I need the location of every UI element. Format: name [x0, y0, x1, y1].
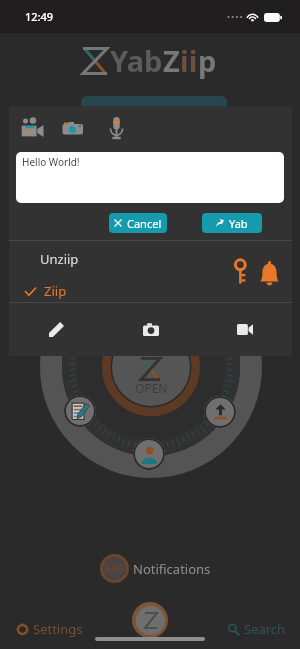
staticText: Yab — [229, 216, 248, 231]
staticText: ii — [180, 41, 198, 80]
button[interactable]: Settings — [0, 620, 120, 638]
button[interactable]: Notifications — [255, 259, 283, 287]
button[interactable]: Hello World! — [16, 152, 284, 203]
button[interactable] — [81, 96, 227, 118]
staticText: Ziip — [44, 282, 67, 300]
button[interactable]: Ziip — [136, 606, 165, 635]
button[interactable]: Take photo — [58, 113, 88, 143]
button[interactable]: Unziip — [34, 246, 85, 272]
button[interactable]: Password — [229, 260, 253, 284]
button[interactable]: Ziip — [19, 278, 73, 304]
staticText: p — [198, 41, 217, 80]
staticText: Hello World! — [22, 155, 80, 169]
button[interactable]: Profile — [133, 438, 165, 470]
staticText: Yab — [110, 41, 163, 80]
button[interactable]: Camera — [104, 303, 198, 356]
staticText: OPEN — [135, 380, 168, 396]
staticText: 606 — [105, 561, 124, 576]
staticText: 12:49 — [25, 9, 54, 24]
button[interactable]: Cancel — [109, 213, 167, 233]
button[interactable]: Search — [180, 620, 300, 638]
staticText: Settings — [33, 620, 83, 638]
staticText: Notifications — [133, 560, 211, 578]
button[interactable]: Notes — [64, 395, 96, 427]
button[interactable]: 606 — [100, 554, 211, 583]
button[interactable]: Yab — [202, 213, 262, 233]
button[interactable]: Record video — [17, 113, 47, 143]
button[interactable]: Video — [198, 303, 292, 356]
staticText: Cancel — [127, 216, 162, 231]
staticText: Unziip — [40, 250, 79, 268]
button[interactable]: Record audio — [101, 113, 131, 143]
button[interactable]: Upload — [204, 396, 236, 428]
staticText: Z — [163, 41, 180, 80]
button[interactable]: Edit — [9, 303, 104, 356]
staticText: Search — [244, 620, 286, 638]
